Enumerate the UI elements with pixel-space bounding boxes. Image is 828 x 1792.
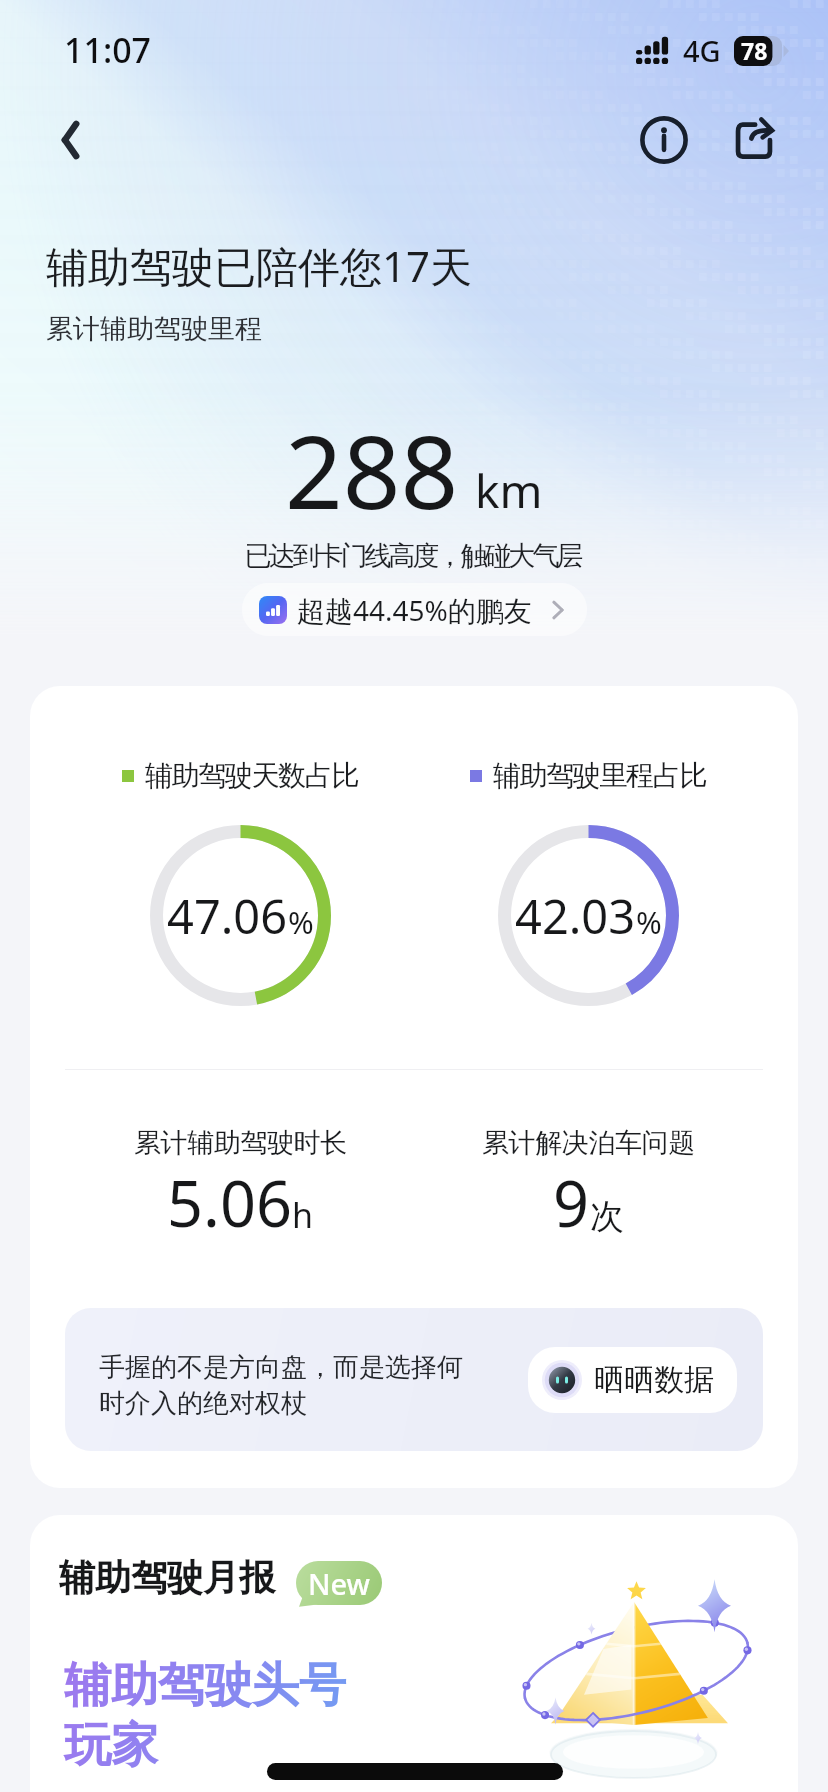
- staticText: %: [636, 901, 662, 943]
- staticText: 5.06: [167, 1160, 292, 1246]
- staticText: 手握的不是方向盘，而是选择何: [99, 1351, 463, 1384]
- staticText: %: [288, 901, 314, 943]
- staticText: 辅助驾驶里程占比: [493, 758, 706, 793]
- staticText: 辅助驾驶月报: [59, 1555, 275, 1600]
- staticText: 累计辅助驾驶里程: [46, 312, 262, 346]
- staticText: h: [292, 1192, 314, 1238]
- staticText: 11:07: [64, 27, 152, 73]
- staticText: 辅助驾驶天数占比: [145, 758, 358, 793]
- button[interactable]: Back: [36, 105, 106, 175]
- staticText: New: [308, 1564, 370, 1603]
- staticText: 超越44.45%的鹏友: [297, 591, 532, 629]
- button[interactable]: 晒晒数据: [528, 1347, 737, 1413]
- staticText: 4G: [683, 31, 721, 70]
- button[interactable]: 超越44.45%的鹏友: [242, 583, 587, 636]
- staticText: 累计辅助驾驶时长: [134, 1126, 347, 1160]
- staticText: 288: [285, 401, 459, 539]
- staticText: 时介入的绝对权杖: [99, 1387, 307, 1420]
- staticText: 晒晒数据: [594, 1361, 714, 1399]
- staticText: 42.03: [515, 884, 636, 948]
- button[interactable]: Share: [716, 102, 792, 178]
- staticText: 78: [741, 35, 768, 66]
- staticText: 辅助驾驶头号 玩家: [64, 1656, 346, 1775]
- staticText: 47.06: [167, 884, 288, 948]
- staticText: 累计解决泊车问题: [482, 1126, 695, 1160]
- button[interactable]: Info: [626, 102, 702, 178]
- staticText: 已达到卡门线高度，触碰大气层: [246, 539, 582, 573]
- staticText: 次: [590, 1195, 624, 1238]
- staticText: km: [475, 459, 543, 522]
- staticText: 9: [553, 1160, 590, 1246]
- staticText: 辅助驾驶已陪伴您17天: [46, 237, 473, 294]
